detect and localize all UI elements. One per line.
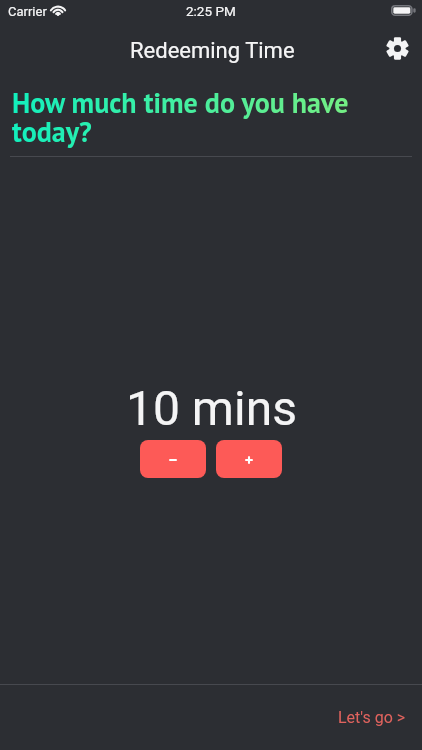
button[interactable]: Increase time <box>216 440 282 478</box>
button[interactable]: Let's go > <box>326 702 418 733</box>
staticText: 2:25 PM <box>186 3 236 19</box>
button[interactable]: Decrease time <box>140 440 206 478</box>
staticText: Let's go > <box>338 708 406 727</box>
button[interactable]: Settings <box>383 34 412 63</box>
staticText: How much time do you have today? <box>12 84 349 150</box>
staticText: Redeeming Time <box>130 38 295 64</box>
staticText: Carrier <box>8 4 47 19</box>
staticText: 10 mins <box>126 380 297 436</box>
